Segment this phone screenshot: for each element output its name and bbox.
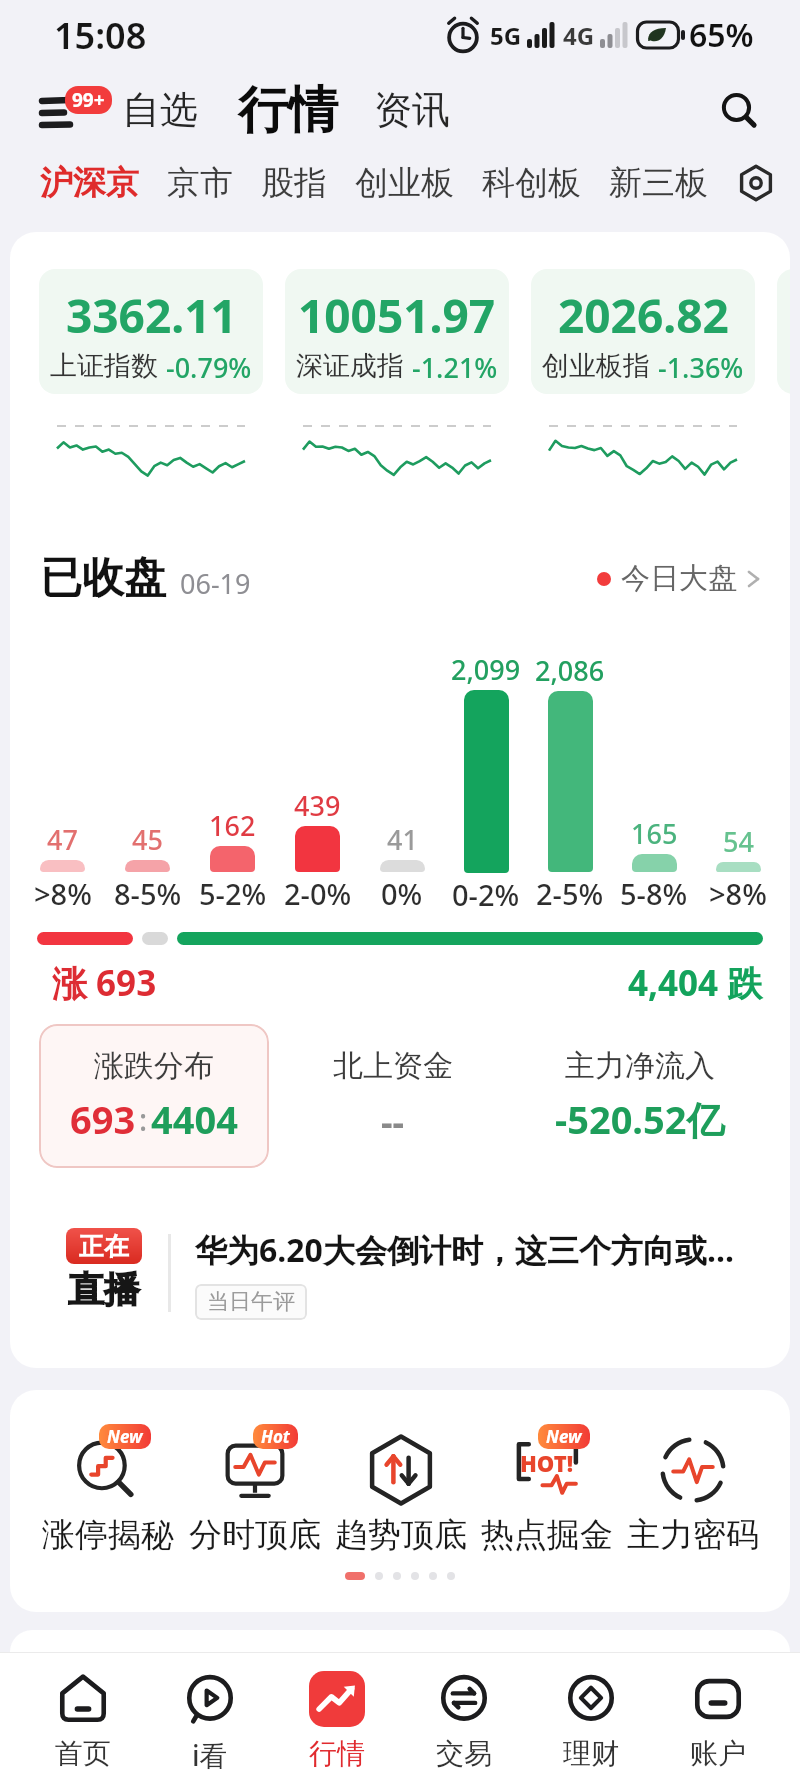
staticText: 0-2% — [452, 875, 520, 913]
staticText: Hot — [261, 1425, 290, 1448]
button[interactable]: 北上资金 — [269, 1047, 516, 1146]
button[interactable]: 3362.11 — [39, 269, 263, 394]
staticText: 沪深京 — [40, 162, 139, 204]
staticText: 41 — [387, 821, 418, 858]
staticText: 新三板 — [609, 162, 708, 204]
staticText: 涨 693 — [52, 959, 157, 1007]
staticText: 45 — [132, 821, 163, 858]
staticText: 2,099 — [451, 651, 521, 688]
button[interactable]: 涨跌分布 — [39, 1024, 269, 1168]
staticText: 直播 — [68, 1267, 140, 1312]
button[interactable]: 主力密码 — [620, 1424, 766, 1556]
staticText: 99+ — [72, 87, 105, 113]
staticText: 2-5% — [536, 874, 604, 913]
staticText: >8% — [34, 874, 92, 913]
button[interactable]: 3279.46 — [777, 269, 790, 394]
button[interactable]: 股指 — [261, 162, 327, 204]
staticText: 当日午评 — [207, 1288, 295, 1316]
staticText: 65% — [689, 13, 754, 57]
staticText: -1.36% — [658, 349, 744, 386]
staticText: 行情 — [238, 79, 338, 142]
button[interactable]: 账户 — [654, 1671, 781, 1771]
staticText: 主力密码 — [627, 1514, 759, 1556]
button[interactable]: 今日大盘 — [597, 560, 763, 597]
staticText: 趋势顶底 — [335, 1514, 467, 1556]
staticText: 162 — [209, 807, 256, 844]
button[interactable]: 京市 — [167, 162, 233, 204]
staticText: 北上资金 — [333, 1047, 453, 1085]
staticText: 47 — [47, 821, 78, 858]
button[interactable] — [736, 163, 776, 203]
staticText: 正在 — [79, 1231, 129, 1262]
staticText: : — [139, 1099, 148, 1140]
staticText: 8-5% — [114, 874, 182, 913]
staticText: -1.21% — [412, 349, 498, 386]
staticText: 行情 — [309, 1736, 365, 1771]
button[interactable]: 主力净流入 — [516, 1047, 763, 1145]
button[interactable] — [718, 89, 760, 131]
staticText: 热点掘金 — [481, 1514, 613, 1556]
button[interactable]: 正在 — [66, 1228, 760, 1320]
staticText: 账户 — [690, 1736, 746, 1771]
staticText: -520.52亿 — [555, 1093, 725, 1145]
button[interactable]: 创业板 — [355, 162, 454, 204]
staticText: New — [107, 1425, 143, 1448]
staticText: 科创板 — [482, 162, 581, 204]
button[interactable]: 新三板 — [609, 162, 708, 204]
staticText: 涨跌分布 — [94, 1047, 214, 1085]
staticText: 上证指数 — [50, 349, 158, 383]
staticText: -- — [381, 1097, 405, 1146]
button[interactable]: i看 — [146, 1671, 273, 1774]
staticText: 4G — [563, 19, 595, 52]
button[interactable]: 自选 — [122, 86, 198, 134]
button[interactable]: 资讯 — [374, 86, 450, 134]
staticText: 资讯 — [374, 86, 450, 134]
staticText: 165 — [631, 815, 678, 852]
staticText: 2026.82 — [558, 284, 729, 347]
staticText: 涨停揭秘 — [42, 1514, 174, 1556]
button[interactable]: 行情 — [238, 79, 338, 142]
staticText: 今日大盘 — [621, 560, 737, 597]
staticText: 交易 — [436, 1736, 492, 1771]
staticText: 2-0% — [284, 874, 352, 913]
staticText: 54 — [723, 823, 754, 860]
staticText: New — [546, 1425, 582, 1448]
staticText: 分时顶底 — [189, 1514, 321, 1556]
staticText: -0.79% — [166, 349, 252, 386]
staticText: 4404 — [151, 1093, 238, 1145]
button[interactable]: 沪深京 — [40, 162, 139, 204]
staticText: 股指 — [261, 162, 327, 204]
button[interactable]: 行情 — [273, 1671, 400, 1771]
button[interactable]: 2026.82 — [531, 269, 755, 394]
staticText: 439 — [294, 787, 341, 824]
button[interactable]: 10051.97 — [285, 269, 509, 394]
staticText: i看 — [192, 1736, 228, 1774]
staticText: 理财 — [563, 1736, 619, 1771]
staticText: HOT! — [520, 1448, 574, 1478]
staticText: 10051.97 — [298, 284, 496, 347]
staticText: 15:08 — [54, 11, 147, 60]
staticText: 主力净流入 — [565, 1047, 715, 1085]
button[interactable]: 交易 — [400, 1671, 527, 1771]
button[interactable]: 趋势顶底 — [328, 1424, 474, 1556]
staticText: 华为6.20大会倒计时，这三个方向或... — [195, 1228, 734, 1272]
staticText: 创业板指 — [542, 349, 650, 383]
staticText: 5G — [490, 19, 522, 52]
staticText: 首页 — [55, 1736, 111, 1771]
staticText: 2,086 — [535, 652, 605, 689]
button[interactable]: HOT! — [474, 1424, 620, 1556]
button[interactable]: New — [34, 1424, 181, 1556]
staticText: 0% — [381, 874, 423, 913]
staticText: 4,404 跌 — [628, 959, 763, 1007]
staticText: 06-19 — [180, 565, 251, 602]
staticText: 5-8% — [620, 874, 688, 913]
button[interactable]: 首页 — [19, 1671, 146, 1771]
staticText: 已收盘 — [40, 552, 166, 605]
staticText: 3362.11 — [66, 284, 237, 347]
button[interactable]: 科创板 — [482, 162, 581, 204]
button[interactable]: Hot — [181, 1424, 328, 1556]
button[interactable]: 理财 — [527, 1671, 654, 1771]
staticText: 深证成指 — [296, 349, 404, 383]
staticText: 创业板 — [355, 162, 454, 204]
button[interactable]: 99+ — [40, 86, 112, 134]
